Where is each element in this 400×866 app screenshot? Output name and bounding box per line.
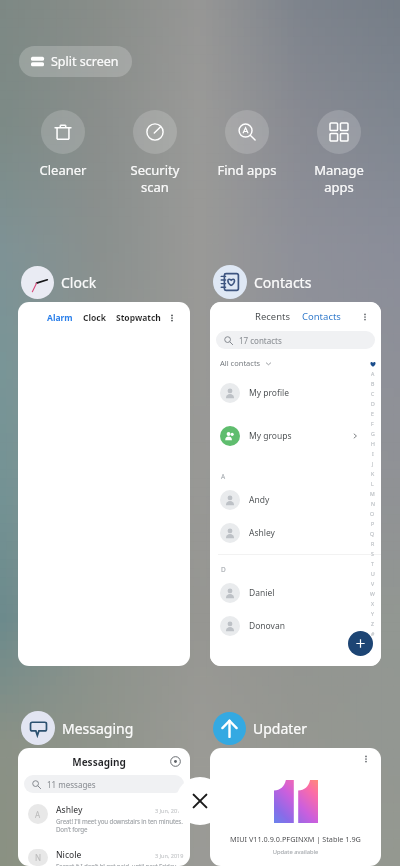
staticText: J	[372, 460, 374, 470]
staticText: Stopwatch	[116, 312, 161, 324]
staticText: K	[371, 470, 375, 480]
button[interactable]: Find apps	[201, 110, 293, 179]
staticText: Andy	[249, 494, 359, 506]
staticText: L	[371, 480, 374, 490]
staticText: Security scan	[109, 161, 201, 196]
staticText: U	[371, 570, 375, 580]
staticText: A	[35, 809, 41, 820]
staticText: B	[371, 380, 375, 390]
staticText: G	[371, 430, 375, 440]
button[interactable]: MIUI V11.0.9.0.PFGINXM | Stable 1.9G	[210, 748, 381, 866]
staticText: E	[371, 410, 374, 420]
button[interactable]: Ashley	[220, 523, 359, 543]
staticText: Ashley	[56, 804, 155, 816]
staticText: Y	[371, 610, 374, 620]
staticText: S	[371, 550, 374, 560]
staticText: Messaging	[62, 719, 134, 738]
staticText: R	[371, 540, 375, 550]
staticText: Cleaner	[17, 161, 109, 179]
staticText: T	[371, 560, 374, 570]
staticText: Split screen	[51, 53, 119, 70]
button[interactable]: Andy	[220, 490, 359, 510]
staticText: D	[221, 565, 226, 574]
button[interactable]: Alarm	[18, 302, 190, 666]
button[interactable]: Donovan	[220, 616, 359, 636]
staticText: Recents	[255, 310, 291, 323]
staticText: Messaging	[28, 755, 170, 769]
button[interactable]: Add contact	[348, 631, 373, 656]
button[interactable]: Close all	[176, 777, 224, 825]
staticText: Updater	[253, 719, 308, 738]
staticText: Contacts	[254, 273, 312, 292]
staticText: Nicole	[56, 849, 155, 861]
staticText: 11 messages	[47, 779, 96, 790]
staticText: MIUI V11.0.9.0.PFGINXM | Stable 1.9G	[210, 834, 381, 844]
button[interactable]: My groups	[220, 426, 359, 446]
button[interactable]: Manage apps	[293, 110, 385, 196]
staticText: Daniel	[249, 587, 359, 599]
staticText: C	[371, 390, 375, 400]
staticText: N	[35, 852, 42, 863]
staticText: 17 contacts	[239, 335, 282, 346]
button[interactable]: Contacts	[210, 265, 312, 299]
staticText: W	[370, 590, 375, 600]
staticText: Update available	[210, 848, 381, 856]
staticText: Ashley	[249, 527, 359, 539]
button[interactable]: Messaging	[18, 711, 134, 745]
staticText: My profile	[249, 387, 359, 399]
staticText: All contacts	[220, 358, 261, 368]
staticText: Find apps	[201, 161, 293, 179]
staticText: #	[371, 630, 375, 640]
staticText: A	[221, 472, 226, 481]
staticText: Forget it,I don't bl get paid, until nex…	[56, 862, 178, 866]
button[interactable]: N	[28, 849, 184, 866]
staticText: X	[371, 600, 375, 610]
button[interactable]: Cleaner	[17, 110, 109, 179]
staticText: H	[371, 440, 375, 450]
button[interactable]: Daniel	[220, 583, 359, 603]
staticText: O	[370, 510, 375, 520]
staticText: Manage apps	[293, 161, 385, 196]
staticText: Clock	[83, 312, 106, 324]
staticText: P	[371, 520, 375, 530]
button[interactable]: My profile	[220, 383, 359, 403]
staticText: Great! I'll meet you downstairs in ten m…	[56, 817, 183, 833]
staticText: Q	[370, 530, 375, 540]
staticText: My groups	[249, 430, 351, 442]
staticText: N	[371, 500, 375, 510]
staticText: Donovan	[249, 620, 359, 632]
button[interactable]: Recents	[210, 302, 381, 666]
button[interactable]: Security scan	[109, 110, 201, 196]
button[interactable]: Updater	[210, 711, 308, 745]
button[interactable]: Messaging	[18, 748, 190, 866]
staticText: 3 Jun, 2019	[155, 852, 184, 859]
staticText: I	[372, 450, 374, 460]
button[interactable]: 11 messages	[24, 775, 184, 793]
staticText: V	[371, 580, 375, 590]
staticText: F	[371, 420, 374, 430]
button[interactable]: Split screen	[19, 46, 132, 77]
staticText: Alarm	[47, 312, 73, 324]
button[interactable]: 17 contacts	[216, 331, 375, 349]
staticText: 3 Jun, 2019	[155, 807, 184, 814]
button[interactable]: Clock	[18, 265, 97, 299]
staticText: Z	[371, 620, 374, 630]
staticText: Clock	[61, 273, 97, 292]
staticText: Contacts	[302, 310, 341, 323]
staticText: M	[370, 490, 375, 500]
staticText: A	[371, 370, 375, 380]
staticText: D	[371, 400, 375, 410]
button[interactable]: A	[28, 804, 184, 833]
